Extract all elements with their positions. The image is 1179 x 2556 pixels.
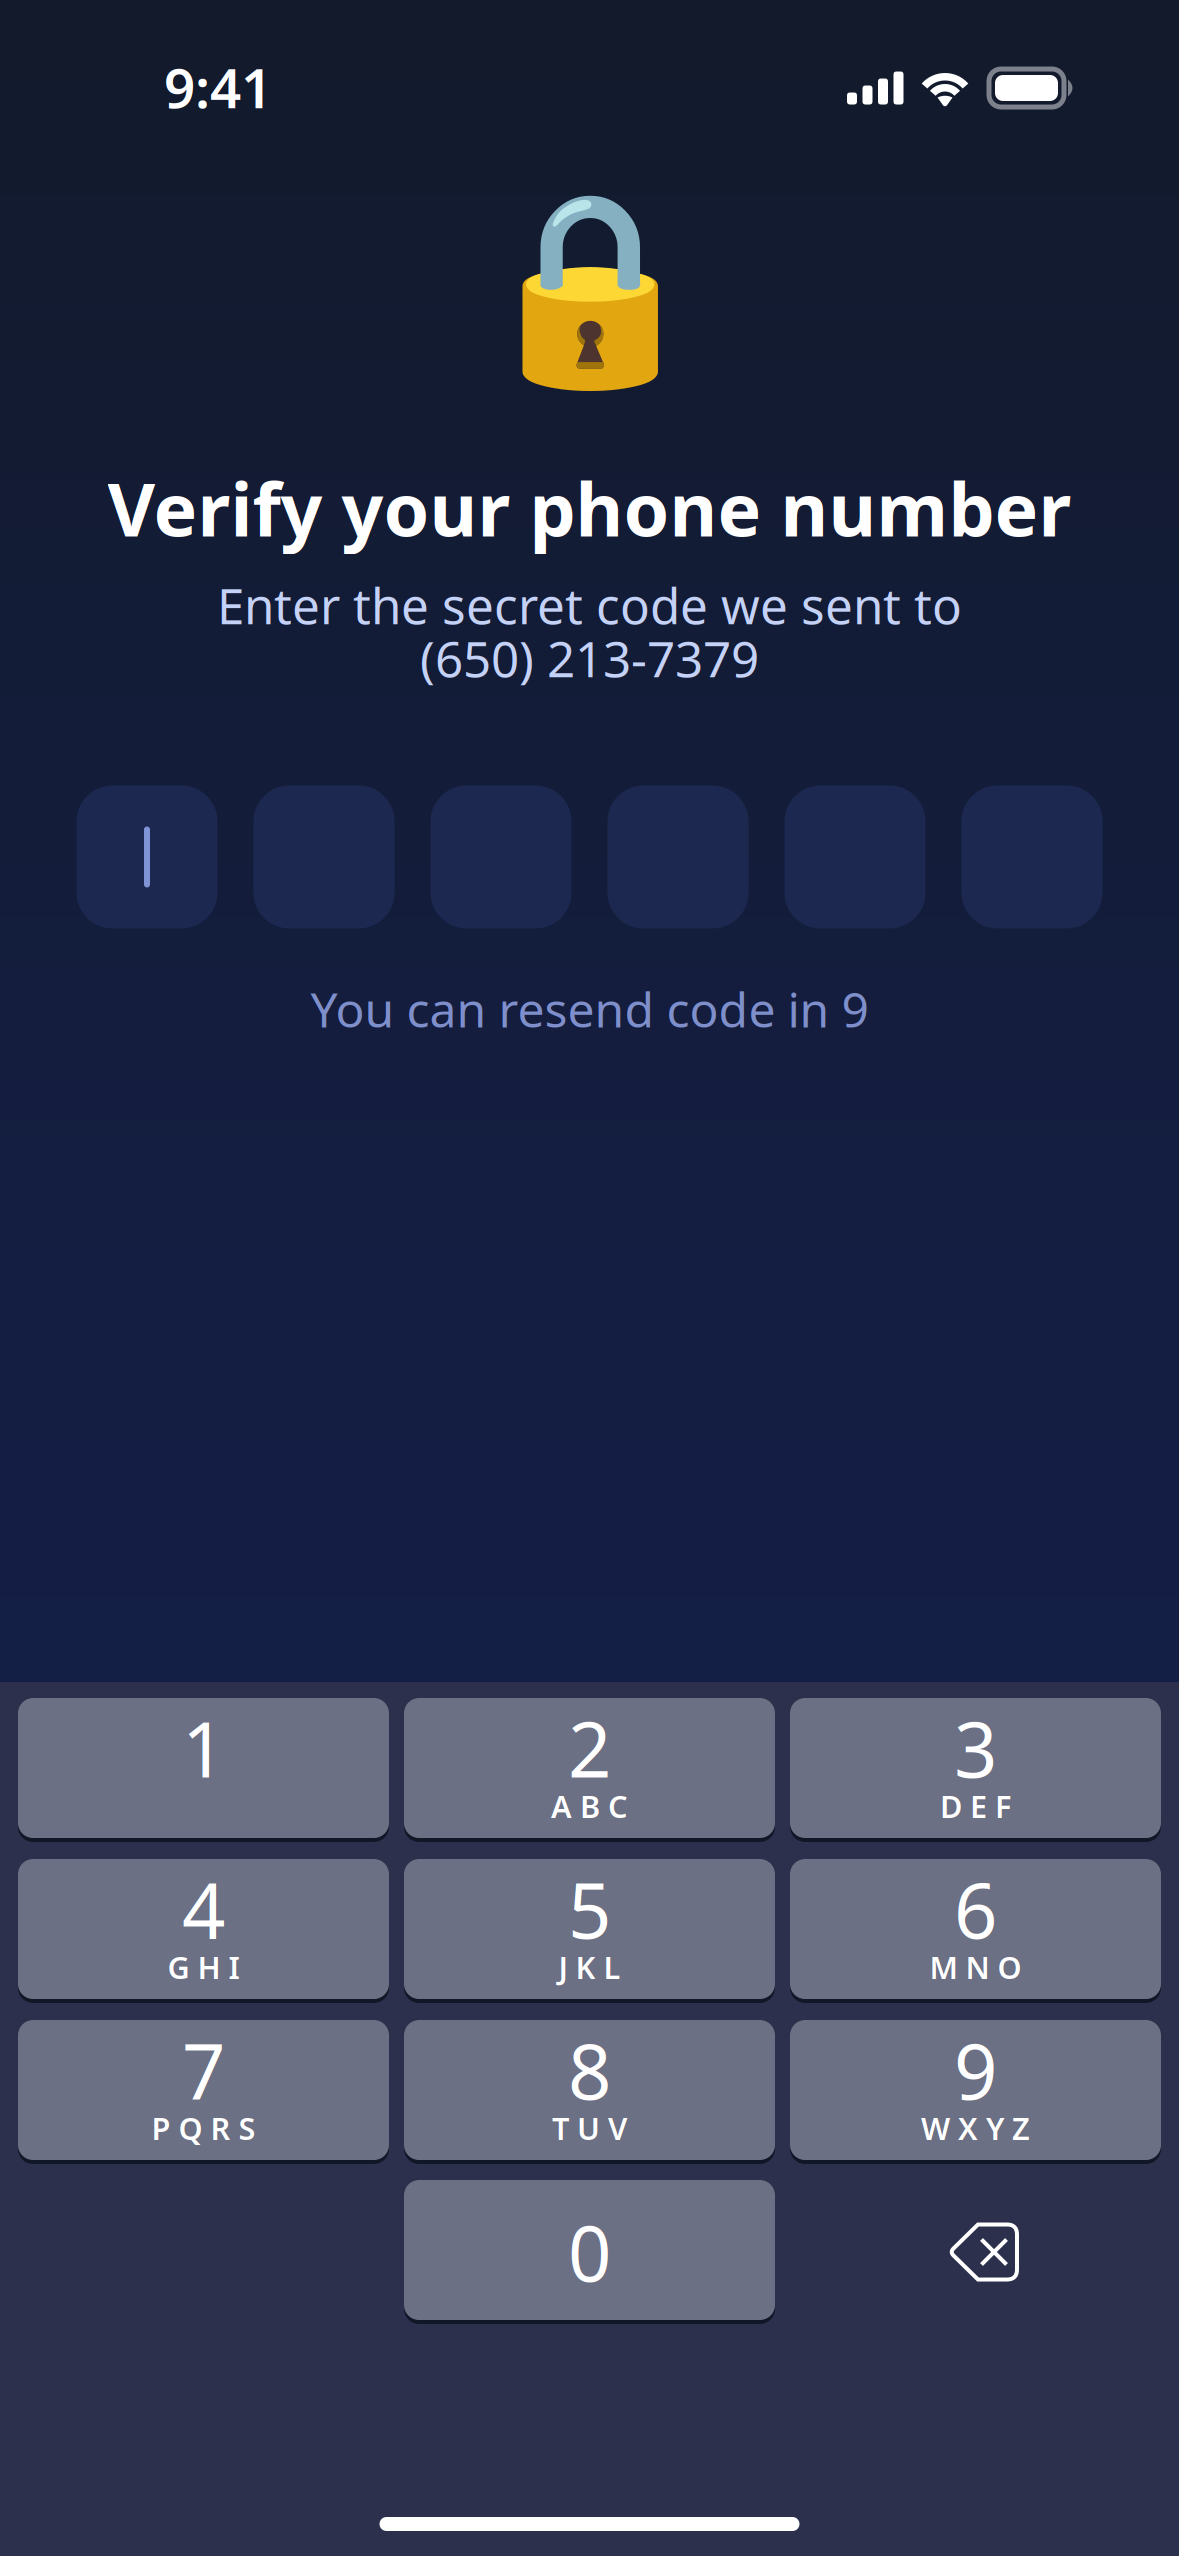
staticText: GHI <box>167 1947 239 1987</box>
staticText: 6 <box>954 1858 997 1959</box>
staticText: 9:41 <box>164 51 272 123</box>
staticText: 3 <box>954 1697 997 1798</box>
staticText: MNO <box>929 1947 1021 1987</box>
button[interactable]: 9 <box>790 2020 1161 2164</box>
staticText: TUV <box>552 2108 627 2148</box>
button[interactable] <box>607 785 748 928</box>
staticText: Verify your phone number <box>107 459 1071 557</box>
button[interactable] <box>76 785 217 928</box>
button[interactable] <box>784 785 925 928</box>
button[interactable] <box>253 785 394 928</box>
button[interactable]: 4 <box>18 1859 389 2003</box>
button[interactable]: 8 <box>404 2020 775 2164</box>
staticText: 5 <box>568 1858 611 1959</box>
staticText: 🔒 <box>473 181 705 395</box>
staticText: 1 <box>182 1697 225 1798</box>
button[interactable]: 7 <box>18 2020 389 2164</box>
button[interactable]: 2 <box>404 1698 775 1842</box>
button[interactable] <box>961 785 1102 928</box>
staticText: ABC <box>551 1786 628 1826</box>
button[interactable] <box>430 785 571 928</box>
staticText: 9 <box>954 2019 997 2120</box>
staticText: 8 <box>568 2019 611 2120</box>
staticText: PQRS <box>151 2108 255 2148</box>
staticText: DEF <box>940 1786 1011 1826</box>
button[interactable]: 1 <box>18 1698 389 1842</box>
staticText: 4 <box>182 1858 225 1959</box>
button[interactable]: 0 <box>404 2180 775 2324</box>
staticText: (650) 213-7379 <box>420 625 759 691</box>
staticText: 2 <box>568 1697 611 1798</box>
staticText: Enter the secret code we sent to <box>217 572 962 638</box>
button[interactable]: You can resend code in 9 <box>310 977 868 1041</box>
button[interactable]: 5 <box>404 1859 775 2003</box>
staticText: WXYZ <box>921 2108 1030 2148</box>
staticText: 7 <box>182 2019 225 2120</box>
button[interactable]: 3 <box>790 1698 1161 1842</box>
staticText: 0 <box>568 2201 611 2302</box>
button[interactable]: 6 <box>790 1859 1161 2003</box>
staticText: You can resend code in 9 <box>310 977 868 1041</box>
staticText: JKL <box>558 1947 620 1987</box>
button[interactable] <box>790 2180 1161 2324</box>
